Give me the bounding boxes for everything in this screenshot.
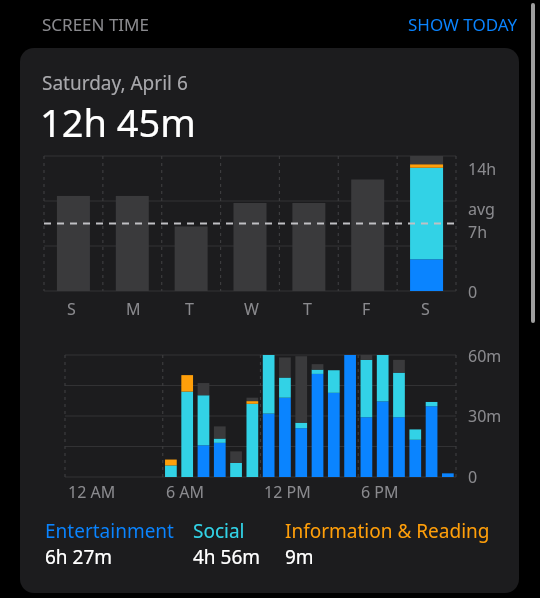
staticText: M	[126, 298, 141, 320]
button[interactable]: Entertainment	[45, 518, 174, 570]
button[interactable]: Information & Reading	[285, 518, 490, 570]
staticText: SCREEN TIME	[42, 13, 149, 36]
staticText: 0	[468, 281, 478, 303]
staticText: 0	[468, 466, 478, 488]
staticText: 12h 45m	[40, 96, 196, 148]
staticText: S	[421, 298, 430, 320]
button[interactable]: Social	[193, 518, 261, 570]
button[interactable]: Saturday, April 6	[20, 48, 519, 593]
staticText: avg	[468, 198, 495, 220]
staticText: 14h	[468, 158, 497, 180]
staticText: Saturday, April 6	[42, 70, 188, 96]
staticText: 12 PM	[264, 481, 311, 503]
staticText: T	[185, 298, 194, 320]
button[interactable]: SCREEN TIME	[42, 13, 149, 36]
staticText: S	[67, 298, 76, 320]
staticText: Entertainment	[45, 518, 174, 544]
staticText: 9m	[285, 544, 314, 570]
staticText: 6 AM	[166, 481, 205, 503]
staticText: Social	[193, 518, 245, 544]
staticText: 6 PM	[361, 481, 399, 503]
staticText: 30m	[468, 405, 502, 427]
staticText: 7h	[468, 221, 488, 243]
staticText: 60m	[468, 345, 502, 367]
staticText: Information & Reading	[285, 518, 490, 544]
staticText: 12 AM	[68, 481, 116, 503]
staticText: 6h 27m	[45, 544, 113, 570]
staticText: T	[303, 298, 312, 320]
button[interactable]: SHOW TODAY	[408, 13, 518, 36]
staticText: F	[362, 298, 371, 320]
staticText: 4h 56m	[193, 544, 261, 570]
staticText: W	[244, 298, 259, 320]
staticText: SHOW TODAY	[408, 13, 518, 36]
